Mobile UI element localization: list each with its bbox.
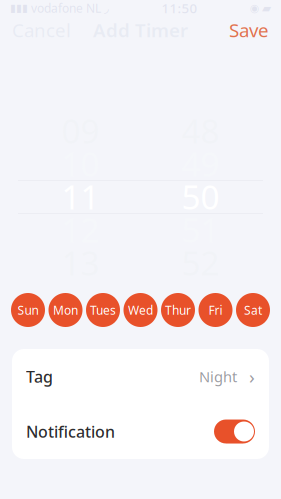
staticText: Sun bbox=[17, 302, 38, 318]
staticText: Mon bbox=[53, 302, 78, 318]
staticText: Save bbox=[229, 18, 269, 42]
staticText: 50 bbox=[181, 174, 219, 219]
staticText: Notification bbox=[26, 421, 115, 442]
staticText: Thur bbox=[165, 302, 191, 318]
button[interactable]: Sat bbox=[236, 293, 270, 327]
staticText: vodafone NL bbox=[31, 0, 101, 16]
staticText: Night bbox=[199, 367, 237, 386]
staticText: Tag bbox=[26, 366, 53, 387]
button[interactable]: Tag bbox=[12, 349, 269, 404]
staticText: Sat bbox=[244, 302, 262, 318]
button[interactable]: Fri bbox=[198, 293, 232, 327]
staticText: 11 bbox=[61, 174, 99, 219]
staticText: 11:50 bbox=[161, 0, 197, 17]
staticText: › bbox=[249, 364, 255, 389]
staticText: ◉ bbox=[250, 2, 259, 14]
staticText: Add Timer bbox=[93, 18, 188, 42]
staticText: Cancel bbox=[12, 18, 71, 42]
button[interactable]: Wed bbox=[123, 293, 157, 327]
button[interactable]: Save bbox=[217, 12, 281, 48]
button[interactable]: Mon bbox=[48, 293, 82, 327]
staticText: ▰ bbox=[262, 1, 271, 15]
button[interactable]: Tues bbox=[86, 293, 120, 327]
staticText: Fri bbox=[208, 302, 222, 318]
staticText: Wed bbox=[128, 302, 153, 318]
staticText: Tues bbox=[90, 302, 116, 318]
staticText: ▮▮▮ bbox=[10, 2, 28, 14]
button[interactable]: Thur bbox=[161, 293, 195, 327]
staticText: ◞ bbox=[104, 1, 109, 15]
button[interactable]: Notification bbox=[12, 404, 269, 459]
button[interactable]: Sun bbox=[11, 293, 45, 327]
